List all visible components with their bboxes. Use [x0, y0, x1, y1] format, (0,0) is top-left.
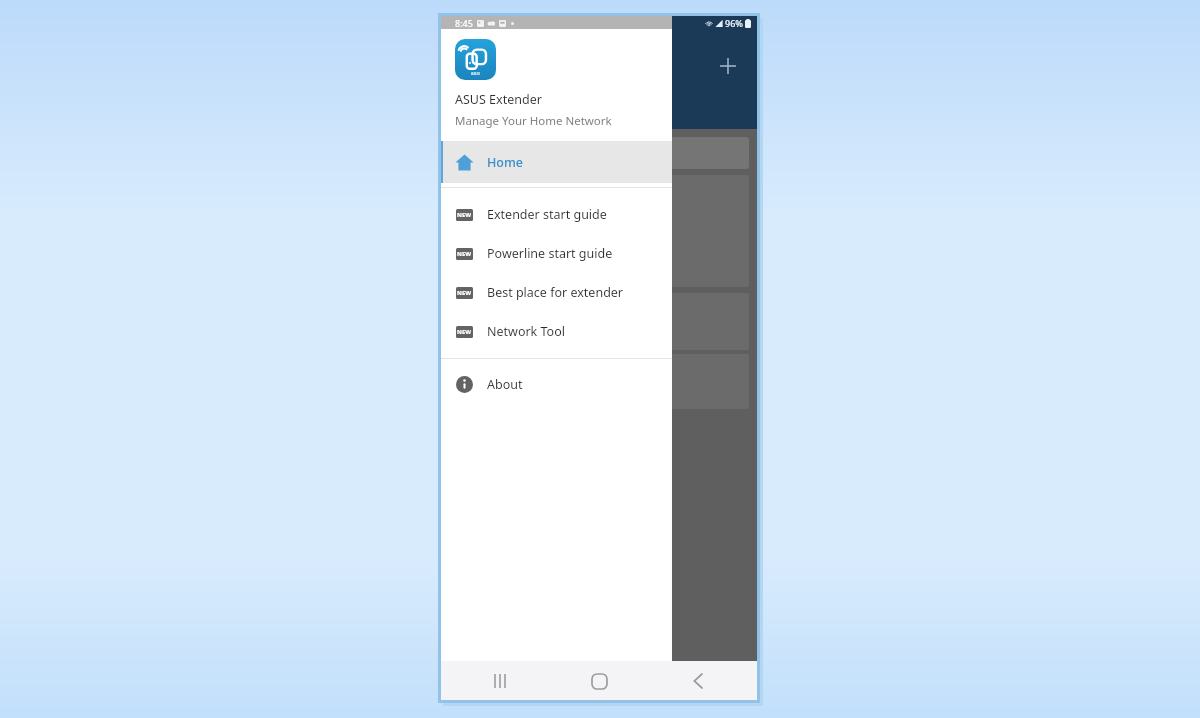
staticText: ASUS	[471, 71, 480, 76]
staticText: 1	[597, 254, 603, 266]
staticText: NEW	[457, 289, 472, 297]
staticText: Network Tool	[487, 323, 565, 340]
staticText: Home	[487, 154, 524, 171]
staticText: NEW	[457, 211, 472, 219]
button[interactable]: NEW	[441, 273, 672, 312]
staticText: 96%	[725, 17, 743, 29]
staticText: NEW	[457, 328, 472, 336]
staticText: Extenders	[573, 236, 626, 251]
staticText: Extender start guide	[487, 206, 607, 223]
staticText: About	[487, 376, 523, 393]
button[interactable]: About	[441, 365, 672, 403]
button[interactable]	[449, 293, 749, 350]
button[interactable]: Home	[582, 664, 616, 698]
staticText: ASUS Extender	[455, 91, 542, 108]
button[interactable]	[449, 354, 749, 409]
staticText: 8:45	[455, 17, 473, 29]
staticText: NEW	[457, 250, 472, 258]
staticText: FAQ	[453, 103, 478, 121]
button[interactable]: Extenders	[449, 175, 749, 287]
button[interactable]: Home	[441, 141, 672, 183]
button[interactable]: NEW	[441, 195, 672, 234]
staticText: Powerline start guide	[487, 245, 613, 262]
button[interactable]: Back	[681, 664, 715, 698]
button[interactable]: Add device	[713, 51, 743, 81]
staticText: Manage Your Home Network	[455, 113, 612, 129]
button[interactable]: ASUS Extender app icon	[455, 39, 496, 80]
button[interactable]: NEW	[441, 312, 672, 351]
button[interactable]: NEW	[441, 234, 672, 273]
button[interactable]: Recent apps	[483, 664, 517, 698]
staticText: Best place for extender	[487, 284, 624, 301]
